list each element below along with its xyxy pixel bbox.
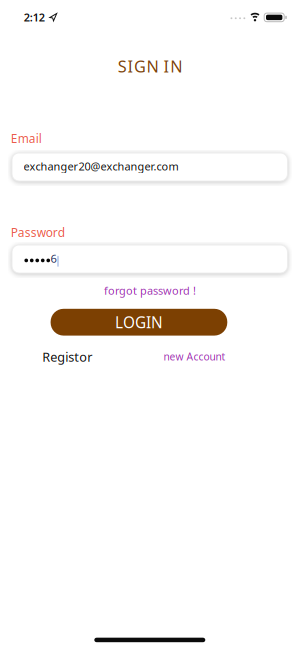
staticText: new Account bbox=[163, 349, 225, 363]
button[interactable]: Password bbox=[12, 245, 287, 273]
staticText: SIGN IN bbox=[118, 55, 182, 77]
button[interactable]: new Account bbox=[163, 349, 225, 363]
staticText: Password bbox=[11, 224, 65, 241]
staticText: Email bbox=[11, 130, 42, 146]
staticText: LOGIN bbox=[115, 312, 163, 333]
staticText: forgot password ! bbox=[104, 283, 196, 298]
button[interactable]: LOGIN bbox=[51, 309, 227, 336]
staticText: exchanger20@exchanger.com bbox=[23, 159, 178, 174]
button[interactable]: forgot password ! bbox=[104, 283, 196, 298]
staticText: 2:12 bbox=[24, 10, 45, 25]
button[interactable]: Email bbox=[12, 153, 287, 181]
staticText: 6 bbox=[51, 251, 57, 266]
staticText: Registor bbox=[42, 348, 92, 365]
